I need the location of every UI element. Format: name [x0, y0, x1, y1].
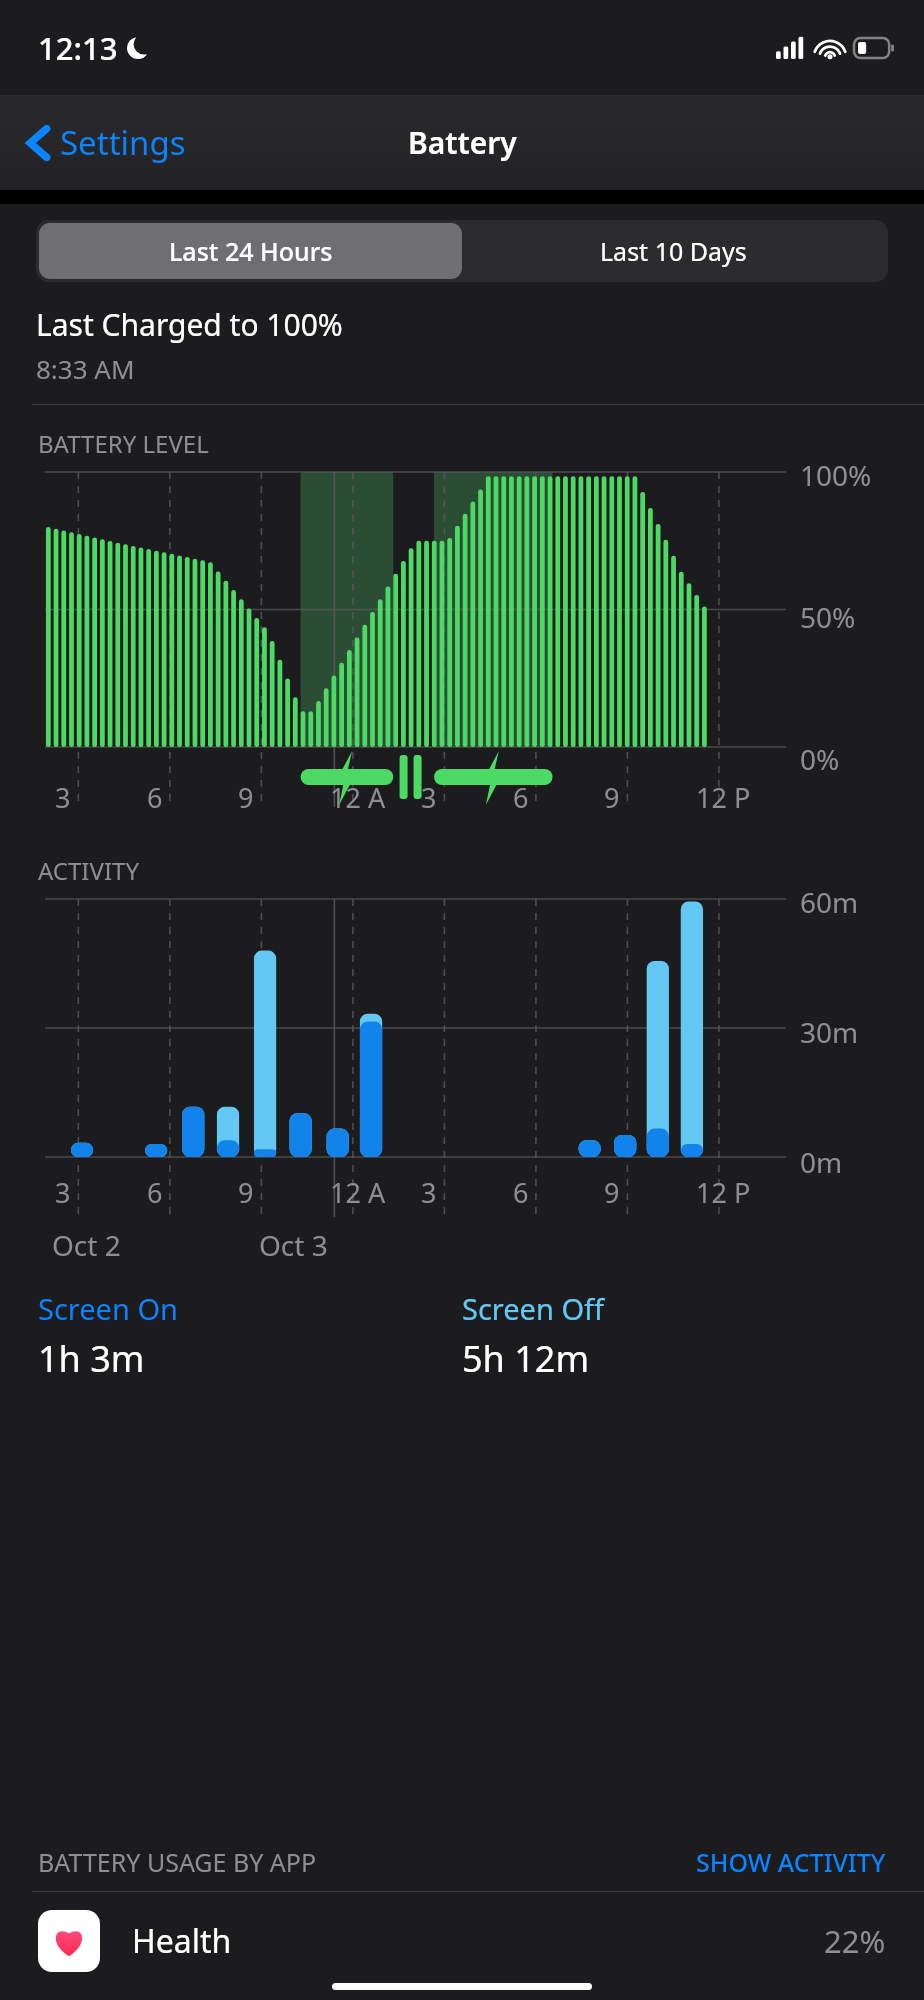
staticText: Settings: [60, 120, 186, 165]
staticText: 1h 3m: [38, 1334, 145, 1383]
staticText: 5h 12m: [462, 1334, 590, 1383]
staticText: 22%: [824, 1920, 886, 1962]
staticText: 8:33 AM: [36, 351, 135, 386]
staticText: 3: [421, 1174, 437, 1211]
button[interactable]: SHOW ACTIVITY: [696, 1845, 886, 1879]
button[interactable]: Health: [0, 1892, 924, 1990]
button[interactable]: Last 24 Hours: [39, 223, 462, 279]
staticText: 50%: [800, 598, 856, 636]
staticText: 6: [513, 779, 529, 816]
staticText: Oct 3: [259, 1226, 328, 1264]
staticText: 100%: [800, 456, 872, 494]
staticText: 60m: [800, 883, 859, 921]
staticText: Battery: [408, 122, 517, 163]
staticText: 12:13: [38, 27, 118, 69]
staticText: 12 A: [330, 779, 386, 816]
staticText: Screen On: [38, 1289, 178, 1328]
staticText: 0m: [800, 1143, 843, 1181]
staticText: 6: [513, 1174, 529, 1211]
staticText: 12 P: [696, 779, 751, 816]
button[interactable]: Settings: [22, 114, 192, 171]
staticText: 3: [421, 779, 437, 816]
staticText: 3: [55, 1174, 71, 1211]
staticText: ACTIVITY: [38, 854, 139, 887]
staticText: Oct 2: [52, 1226, 121, 1264]
staticText: BATTERY LEVEL: [38, 427, 209, 460]
staticText: 9: [604, 779, 620, 816]
staticText: Health: [132, 1919, 232, 1963]
staticText: SHOW ACTIVITY: [696, 1845, 886, 1879]
staticText: Last 10 Days: [600, 234, 747, 268]
staticText: 9: [238, 1174, 254, 1211]
staticText: 30m: [800, 1013, 859, 1051]
staticText: 12 P: [696, 1174, 751, 1211]
button[interactable]: Last 10 Days: [462, 223, 885, 279]
staticText: 12 A: [330, 1174, 386, 1211]
staticText: Screen Off: [462, 1289, 605, 1328]
staticText: 6: [147, 779, 163, 816]
staticText: BATTERY USAGE BY APP: [38, 1845, 317, 1879]
staticText: 0%: [800, 740, 840, 778]
staticText: 6: [147, 1174, 163, 1211]
staticText: Last 24 Hours: [169, 234, 333, 268]
staticText: 9: [604, 1174, 620, 1211]
staticText: 9: [238, 779, 254, 816]
staticText: 3: [55, 779, 71, 816]
staticText: Last Charged to 100%: [36, 304, 343, 345]
